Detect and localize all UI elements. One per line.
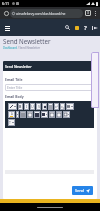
button[interactable] <box>42 103 47 110</box>
button[interactable]: B <box>18 103 23 110</box>
button[interactable]: Help <box>81 23 90 32</box>
button[interactable]: airsafebevy.com/dashboard/ne <box>12 9 81 18</box>
staticText: 3 <box>87 11 89 15</box>
staticText: Dashboard <box>3 46 17 50</box>
button[interactable] <box>56 111 62 118</box>
staticText: x₂ <box>61 105 64 109</box>
staticText: ? <box>84 24 87 32</box>
button[interactable] <box>27 111 33 118</box>
staticText: A <box>11 112 13 116</box>
button[interactable]: T <box>8 119 15 126</box>
button[interactable]: Home <box>2 9 10 17</box>
button[interactable] <box>63 111 70 118</box>
button[interactable] <box>48 103 53 110</box>
button[interactable] <box>8 103 17 110</box>
staticText: B <box>19 104 22 109</box>
staticText: S <box>38 104 40 109</box>
staticText: T <box>9 120 11 125</box>
staticText: U <box>31 104 34 109</box>
button[interactable]: Layout Preview <box>91 52 99 108</box>
staticText: Enter Title <box>7 86 23 90</box>
staticText: Email Body <box>5 94 24 99</box>
button[interactable]: Account <box>90 23 99 32</box>
button[interactable] <box>34 111 40 118</box>
button[interactable]: x² <box>54 103 59 110</box>
button[interactable]: U <box>30 103 35 110</box>
button[interactable] <box>41 111 48 118</box>
staticText: 6:11 <box>2 1 10 6</box>
button[interactable]: Enter Title <box>7 84 93 91</box>
button[interactable] <box>20 111 26 118</box>
staticText: airsafebevy.com/dashboard/ne <box>16 11 66 16</box>
staticText: Send Newsletter <box>3 37 51 45</box>
button[interactable]: I <box>24 103 29 110</box>
staticText: Email Title <box>5 77 23 82</box>
staticText: Send Newsletter <box>5 64 32 69</box>
button[interactable]: Send <box>72 186 93 195</box>
button[interactable]: Tabs <box>85 10 91 16</box>
button[interactable]: Notifications <box>72 23 81 32</box>
button[interactable]: Dashboard <box>3 46 41 50</box>
staticText: Send <box>75 188 84 193</box>
button[interactable] <box>16 111 19 118</box>
button[interactable]: A <box>8 111 15 118</box>
staticText: x² <box>55 105 58 109</box>
staticText: I <box>26 104 28 109</box>
button[interactable]: More options <box>92 9 98 17</box>
button[interactable]: S <box>36 103 41 110</box>
staticText: / Send Newsletter <box>17 46 41 50</box>
button[interactable]: Menu <box>2 23 12 33</box>
button[interactable] <box>49 111 55 118</box>
button[interactable]: x₂ <box>60 103 65 110</box>
button[interactable]: Search <box>63 23 72 32</box>
button[interactable] <box>66 103 74 110</box>
